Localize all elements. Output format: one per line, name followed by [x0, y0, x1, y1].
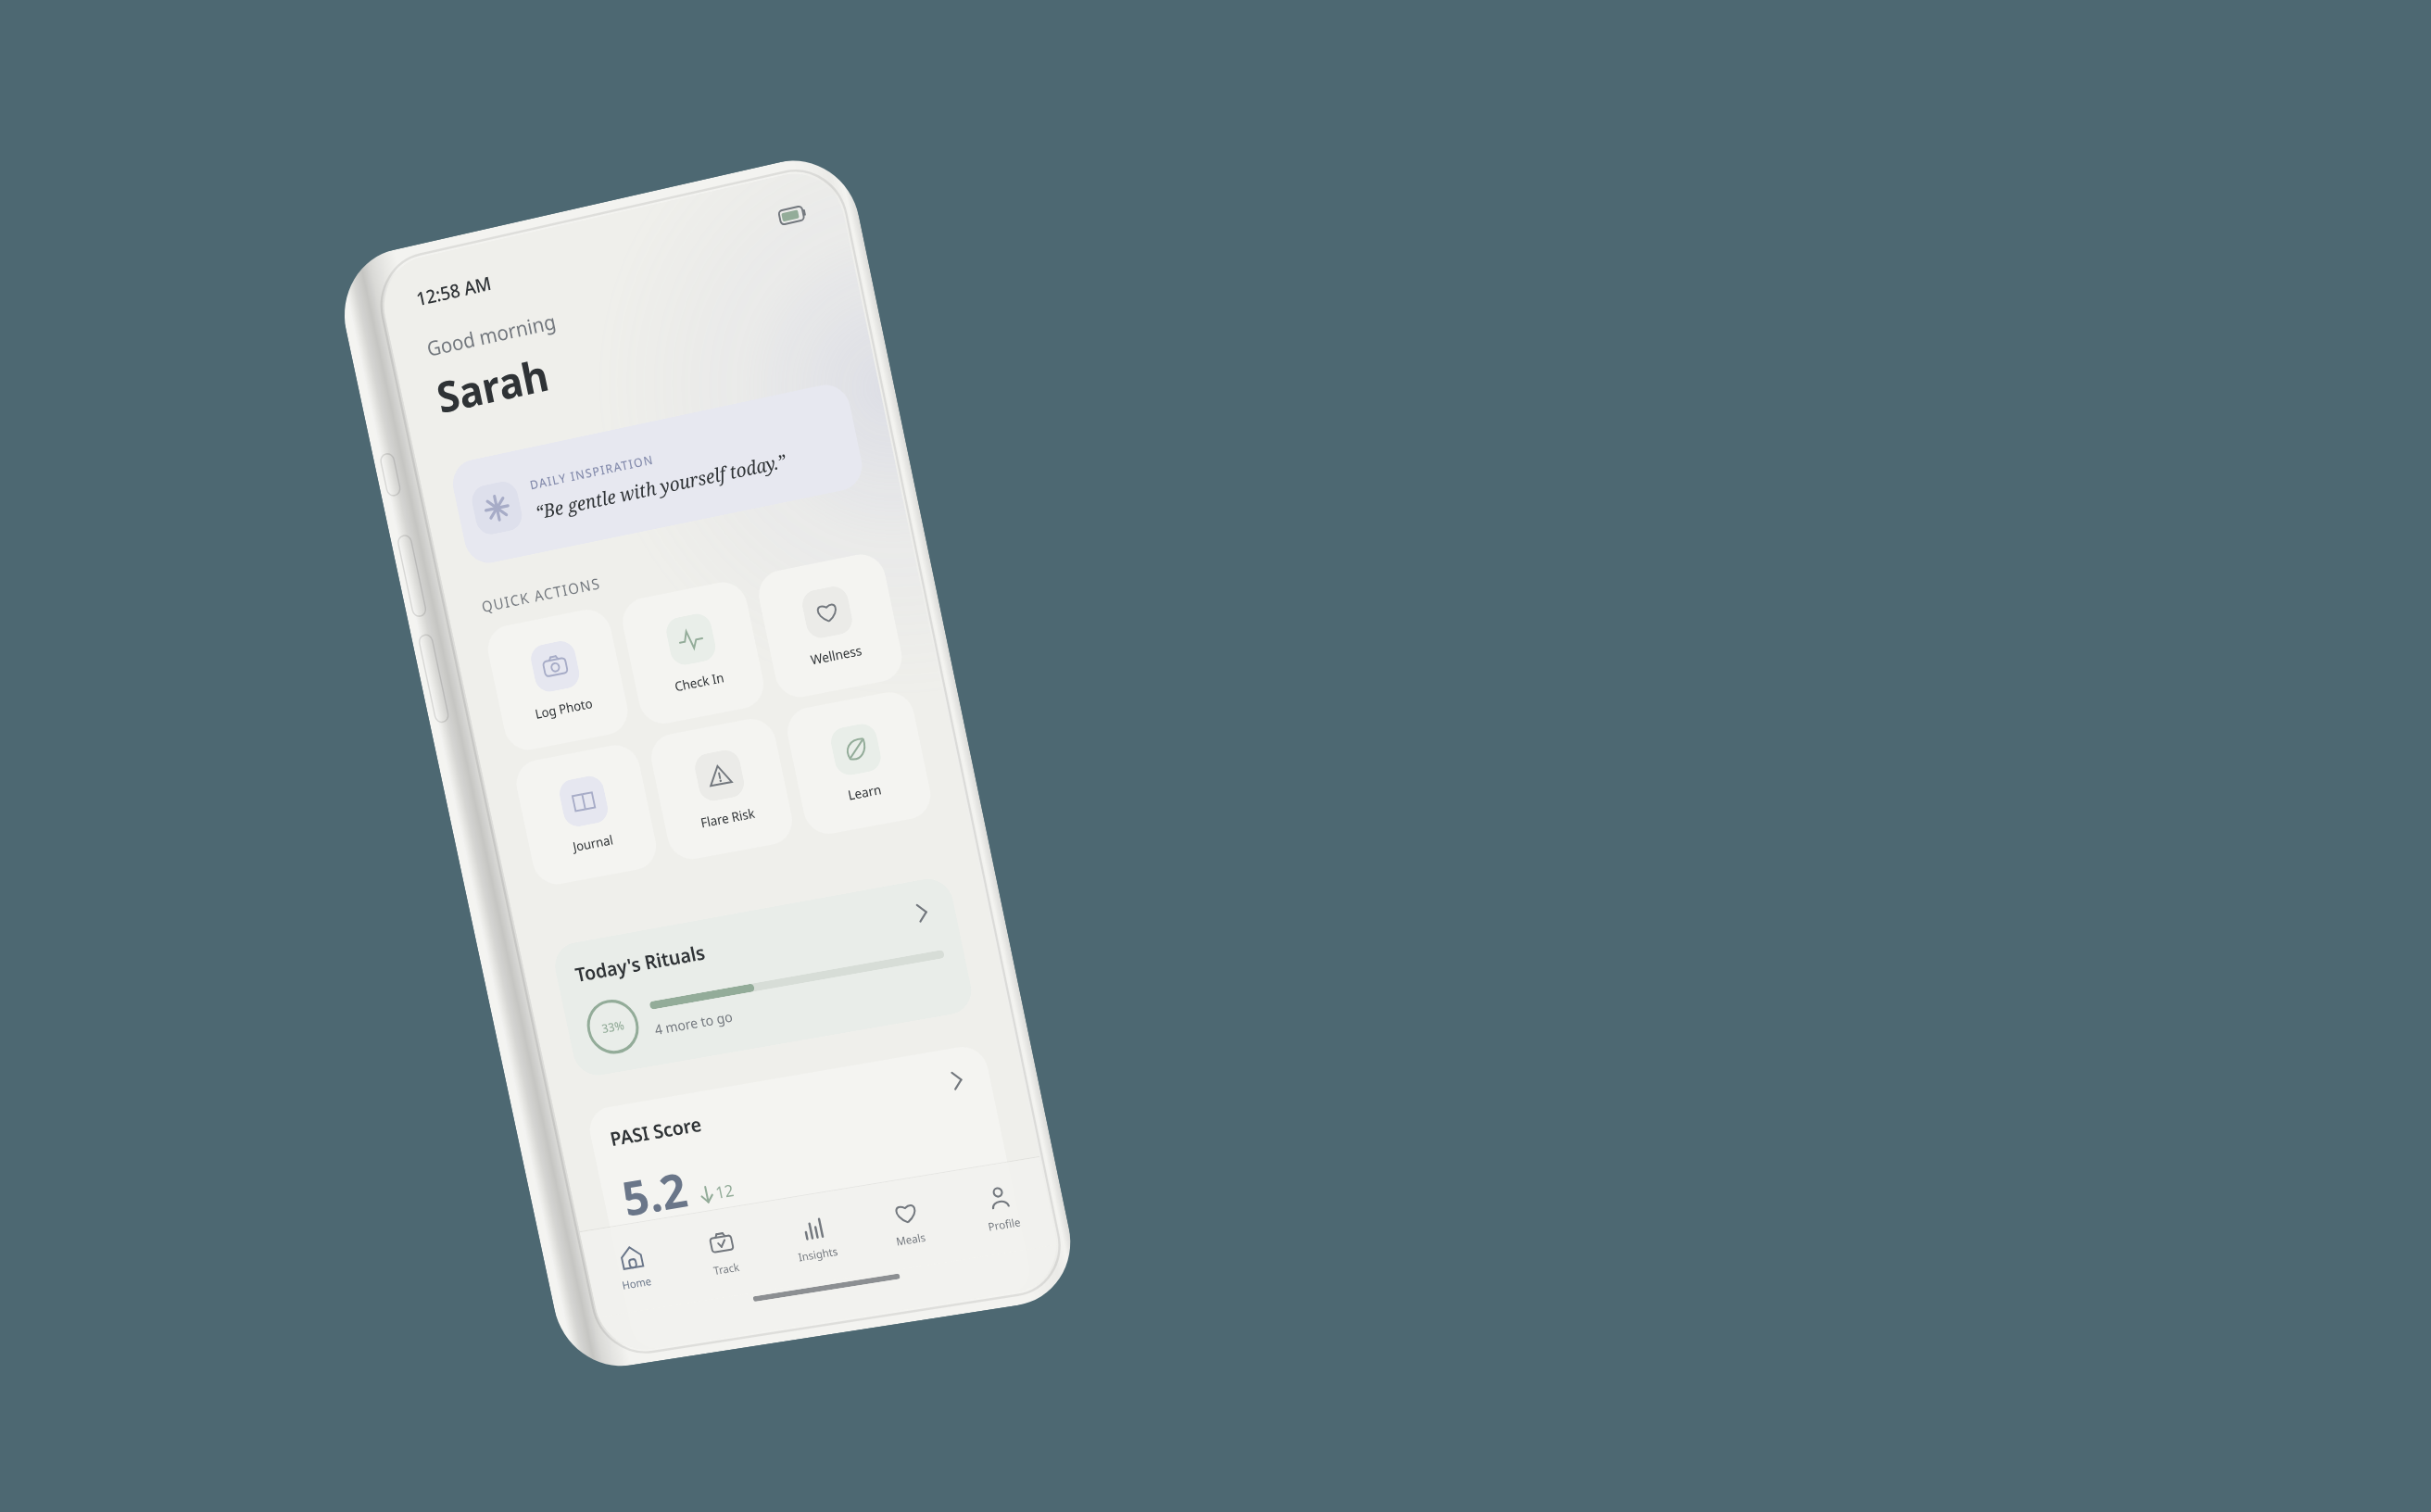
- staticText: “Be gentle with yourself today.”: [159, 275, 429, 300]
- button[interactable]: Learn: [372, 532, 505, 660]
- staticText: Profile: [472, 1065, 506, 1080]
- staticText: Wellness: [411, 477, 465, 495]
- button[interactable]: Today's Rituals: [78, 721, 505, 858]
- button[interactable]: Open PASI score details: [457, 910, 485, 938]
- button[interactable]: PASI Score: [78, 891, 505, 1142]
- button[interactable]: Wellness: [372, 393, 505, 521]
- button[interactable]: DAILY INSPIRATION: [78, 222, 505, 328]
- button[interactable]: Profile: [439, 1013, 538, 1102]
- staticText: Learn: [421, 616, 456, 634]
- button[interactable]: Open today's rituals: [457, 739, 485, 767]
